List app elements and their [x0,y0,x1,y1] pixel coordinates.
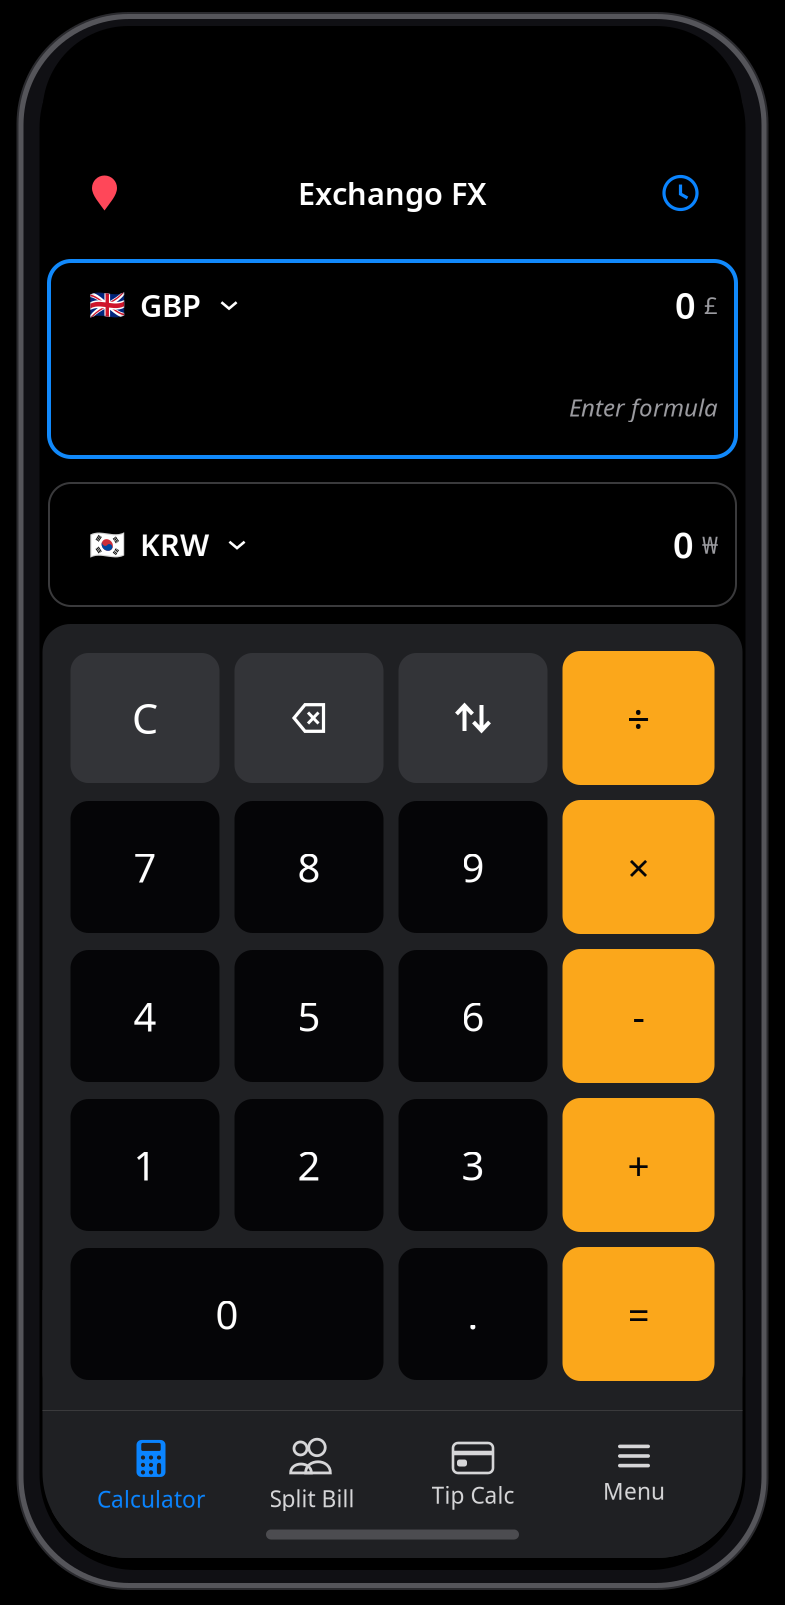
staticText: 🇰🇷 [89,528,126,561]
staticText: 0 [215,1287,238,1340]
button[interactable]: 7 [70,801,219,933]
button[interactable]: Tip Calc [392,1411,553,1511]
staticText: 6 [461,989,484,1042]
staticText: 5 [297,989,320,1042]
staticText: - [632,990,644,1042]
staticText: Split Bill [269,1483,354,1513]
staticText: KRW [140,524,209,565]
staticText: ÷ [626,691,650,745]
staticText: £ [704,289,718,321]
button[interactable]: 🇰🇷 [49,483,736,606]
staticText: 3 [461,1138,484,1191]
button[interactable]: 9 [398,801,547,933]
button[interactable]: × [562,800,714,934]
button[interactable]: 4 [70,950,219,1082]
staticText: + [627,1139,649,1191]
button[interactable]: Calculator [70,1411,231,1511]
staticText: 9 [461,840,484,893]
button[interactable]: 8 [234,801,383,933]
button[interactable]: Split Bill [231,1411,392,1511]
button[interactable]: 5 [234,950,383,1082]
button[interactable]: . [398,1248,547,1380]
button[interactable]: Saved locations [74,170,134,216]
staticText: 7 [133,840,156,893]
staticText: 4 [133,989,156,1042]
button[interactable]: ÷ [562,651,714,785]
button[interactable]: 6 [398,950,547,1082]
staticText: Calculator [97,1484,205,1514]
button[interactable]: C [70,653,219,783]
button[interactable]: Delete [234,653,383,783]
button[interactable]: 3 [398,1099,547,1231]
button[interactable]: 2 [234,1099,383,1231]
button[interactable]: Menu [553,1411,714,1511]
staticText: 1 [133,1138,156,1191]
button[interactable]: 🇬🇧 [49,261,736,457]
button[interactable]: History [650,170,710,216]
staticText: C [132,691,158,745]
staticText: Menu [603,1476,665,1506]
staticText: Exchango FX [298,173,487,213]
button[interactable]: = [562,1247,714,1381]
staticText: Enter formula [569,391,718,423]
staticText: = [627,1288,649,1340]
staticText: 0 [675,281,696,329]
staticText: GBP [140,285,201,325]
staticText: 🇬🇧 [89,288,126,322]
staticText: 0 [673,521,694,568]
staticText: Tip Calc [431,1480,514,1510]
staticText: 8 [297,840,320,893]
staticText: . [467,1287,478,1340]
button[interactable]: + [562,1098,714,1232]
staticText: ₩ [702,529,718,560]
button[interactable]: 0 [70,1248,383,1380]
button[interactable]: - [562,949,714,1083]
staticText: × [627,841,649,893]
staticText: 2 [297,1138,320,1191]
button[interactable]: 1 [70,1099,219,1231]
button[interactable]: Swap currencies [398,653,547,783]
